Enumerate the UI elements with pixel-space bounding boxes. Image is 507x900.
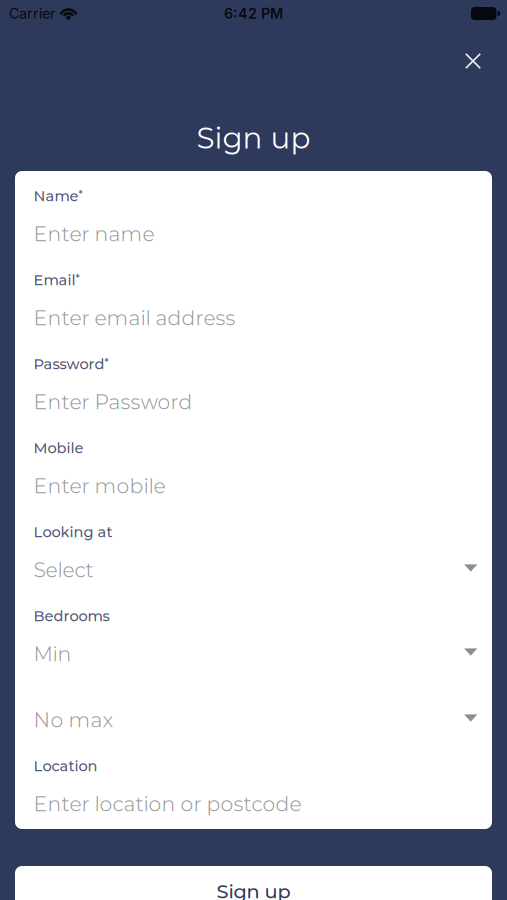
staticText: Enter location or postcode [33, 792, 301, 816]
staticText: Enter email address [33, 306, 235, 330]
staticText: Mobile [33, 439, 83, 457]
staticText: Bedrooms [33, 607, 109, 625]
staticText: Sign up [196, 120, 310, 156]
staticText: Password* [33, 355, 108, 373]
staticText: Email* [33, 271, 79, 289]
staticText: Location [33, 757, 97, 775]
staticText: Enter mobile [33, 474, 165, 498]
staticText: Sign up [216, 879, 290, 900]
staticText: 6:42 PM [224, 5, 283, 22]
staticText: Name* [33, 187, 82, 205]
button[interactable]: Sign up [15, 866, 492, 900]
button[interactable]: Enter email address [33, 305, 477, 331]
button[interactable]: Select [33, 557, 477, 583]
button[interactable]: No max [33, 707, 477, 733]
staticText: Select [33, 558, 93, 582]
button[interactable]: Min [33, 641, 477, 667]
button[interactable]: Enter Password [33, 389, 477, 415]
button[interactable]: Enter name [33, 221, 477, 247]
staticText: Min [33, 642, 71, 666]
button[interactable]: Enter mobile [33, 473, 477, 499]
staticText: Enter Password [33, 390, 192, 414]
staticText: Carrier [9, 5, 55, 22]
button[interactable] [465, 53, 481, 69]
staticText: No max [33, 708, 113, 732]
staticText: Enter name [33, 222, 154, 246]
button[interactable]: Enter location or postcode [33, 791, 477, 817]
staticText: Looking at [33, 523, 112, 541]
